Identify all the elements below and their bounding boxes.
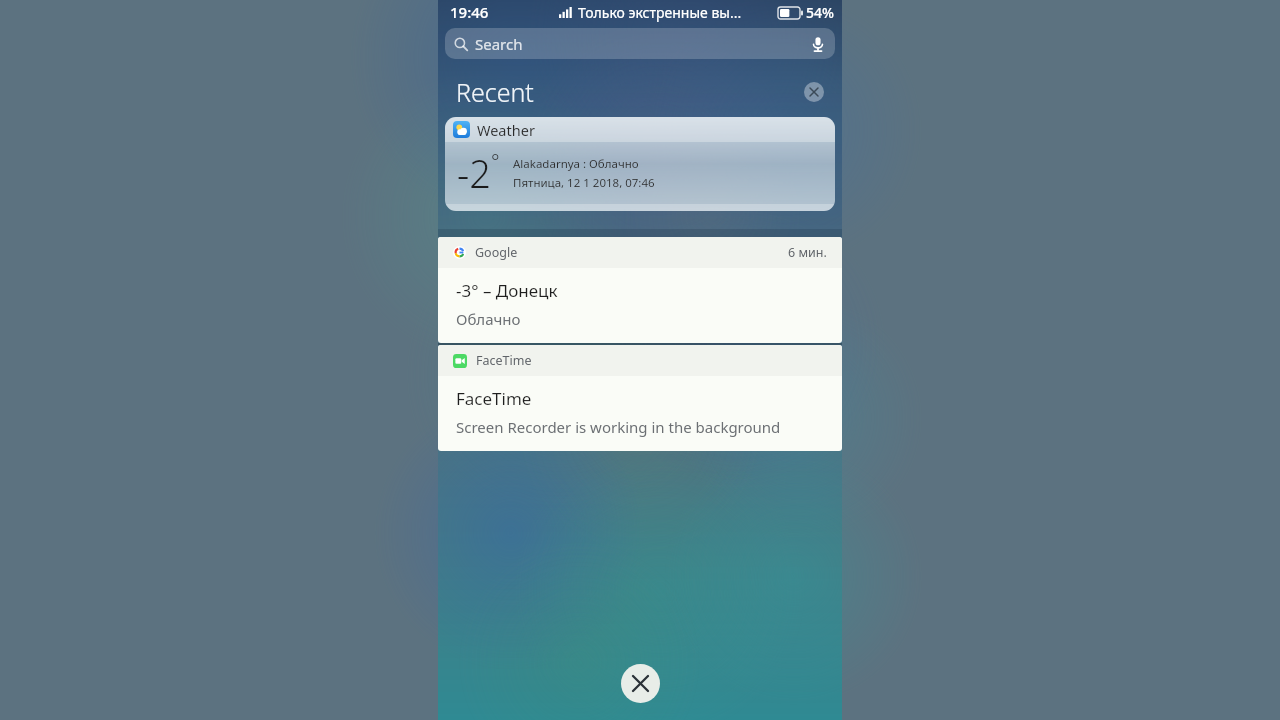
staticText: 6 мин.: [788, 244, 827, 261]
staticText: Google: [475, 244, 518, 261]
staticText: Alakadarnya : Облачно: [513, 156, 639, 172]
button[interactable]: FaceTime: [438, 345, 842, 451]
staticText: 54%: [806, 3, 834, 22]
staticText: -3° – Донецк: [456, 279, 558, 302]
other: Voice search: [810, 36, 826, 52]
staticText: 19:46: [450, 2, 489, 22]
button[interactable]: Search: [445, 28, 835, 59]
staticText: -2: [457, 147, 491, 199]
staticText: Облачно: [456, 309, 521, 329]
staticText: Пятница, 12 1 2018, 07:46: [513, 175, 655, 191]
staticText: Только экстренные вы...: [578, 3, 742, 22]
staticText: °: [491, 148, 500, 175]
button[interactable]: Clear recent: [804, 82, 824, 102]
staticText: Weather: [477, 120, 535, 140]
staticText: Search: [475, 34, 523, 54]
staticText: Screen Recorder is working in the backgr…: [456, 417, 781, 437]
staticText: FaceTime: [476, 352, 532, 369]
staticText: Recent: [456, 75, 534, 109]
button[interactable]: Weather: [445, 117, 835, 211]
button[interactable]: Close: [621, 664, 660, 703]
button[interactable]: Google: [438, 237, 842, 343]
staticText: FaceTime: [456, 387, 532, 410]
